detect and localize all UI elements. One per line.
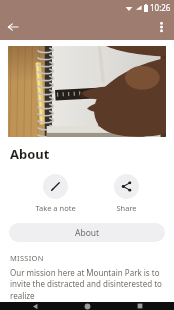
staticText: 10:26 bbox=[150, 2, 171, 13]
staticText: MISSION bbox=[10, 253, 44, 263]
staticText: About bbox=[10, 145, 50, 163]
staticText: About bbox=[75, 227, 100, 239]
button[interactable]: Home bbox=[69, 302, 105, 310]
staticText: Take a note bbox=[35, 203, 76, 213]
button[interactable]: About bbox=[9, 223, 165, 242]
button[interactable]: Take a note bbox=[31, 173, 80, 214]
button[interactable]: More options bbox=[148, 14, 174, 40]
staticText: Our mission here at Mountain Park is to … bbox=[10, 267, 164, 302]
button[interactable]: Back bbox=[17, 302, 53, 310]
staticText: Share bbox=[116, 203, 137, 213]
button[interactable]: Share bbox=[110, 173, 143, 214]
button[interactable]: Back bbox=[0, 14, 26, 40]
button[interactable]: Recent apps bbox=[122, 302, 158, 310]
